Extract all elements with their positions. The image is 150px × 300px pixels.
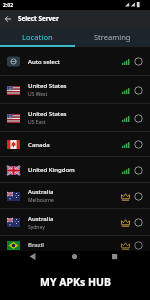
staticText: Brazil [28,241,44,249]
staticText: Select Server [18,14,59,23]
button[interactable]: Australia [0,209,150,236]
button[interactable]: Streaming [75,27,150,47]
button[interactable]: United States [0,76,150,104]
button[interactable]: United States [0,104,150,132]
staticText: MY APKs HUB [40,275,111,289]
staticText: Auto select [28,58,60,66]
button[interactable] [3,14,13,24]
staticText: Melbourne [28,197,54,204]
button[interactable]: Auto select [0,47,150,76]
staticText: Australia [28,215,54,223]
staticText: US West [28,91,48,98]
staticText: United States [28,110,67,118]
staticText: Australia [28,188,54,196]
staticText: Canada [28,141,50,149]
staticText: Location [22,32,53,42]
staticText: Streaming [94,32,131,42]
staticText: 2:02 [3,2,13,9]
button[interactable]: Location [0,27,75,47]
button[interactable]: Canada [0,132,150,157]
staticText: United States [28,82,67,90]
staticText: US East [28,119,46,126]
button[interactable]: Australia [0,183,150,209]
staticText: United Kingdom [28,166,75,174]
button[interactable]: United Kingdom [0,157,150,183]
button[interactable]: Brazil [0,236,150,251]
staticText: Sydney [28,224,45,231]
